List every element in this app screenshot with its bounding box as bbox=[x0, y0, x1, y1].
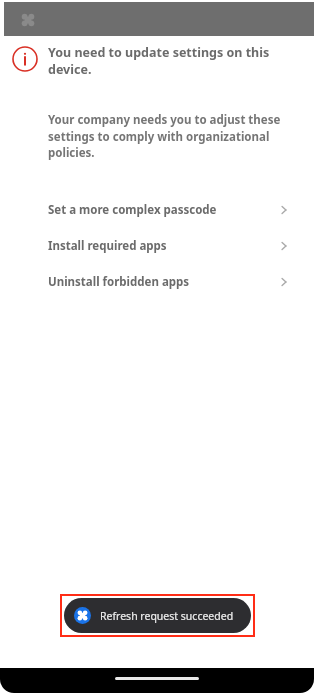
staticText: Install required apps bbox=[48, 238, 167, 254]
staticText: Your company needs you to adjust these s… bbox=[48, 112, 288, 160]
staticText: You need to update settings on this devi… bbox=[48, 44, 298, 77]
staticText: Set a more complex passcode bbox=[48, 202, 217, 218]
button[interactable]: Refresh request succeeded bbox=[64, 598, 251, 633]
staticText: Uninstall forbidden apps bbox=[48, 274, 190, 290]
button[interactable]: Install required apps bbox=[0, 234, 314, 258]
button[interactable]: Uninstall forbidden apps bbox=[0, 270, 314, 294]
button[interactable]: Set a more complex passcode bbox=[0, 198, 314, 222]
button[interactable]: App icon bbox=[20, 12, 36, 28]
staticText: Refresh request succeeded bbox=[100, 609, 234, 623]
